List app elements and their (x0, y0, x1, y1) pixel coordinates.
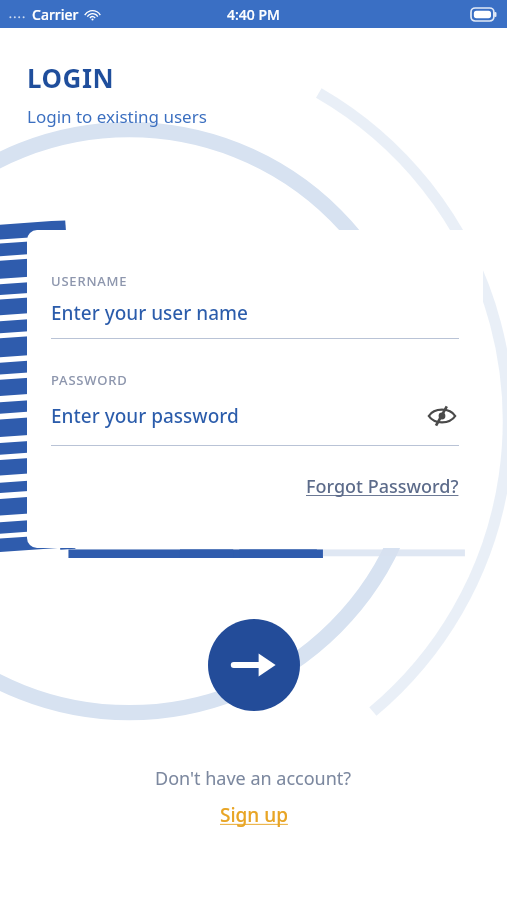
staticText: Sign up (220, 802, 288, 828)
button[interactable]: Submit login (208, 619, 300, 711)
button[interactable]: Enter your user name (51, 300, 459, 326)
staticText: 4:40 PM (227, 5, 280, 24)
staticText: LOGIN (27, 60, 115, 95)
button[interactable]: Show password (425, 399, 459, 433)
staticText: Don't have an account? (155, 766, 352, 791)
button[interactable]: Sign up (220, 802, 288, 828)
staticText: Enter your password (51, 403, 239, 429)
staticText: Forgot Password? (306, 474, 459, 499)
staticText: Enter your user name (51, 300, 248, 326)
button[interactable]: Forgot Password? (306, 474, 459, 499)
button[interactable]: Enter your password (51, 403, 425, 429)
staticText: PASSWORD (51, 371, 128, 389)
staticText: Carrier (32, 5, 79, 24)
staticText: USERNAME (51, 272, 128, 290)
staticText: Login to existing users (27, 105, 207, 128)
